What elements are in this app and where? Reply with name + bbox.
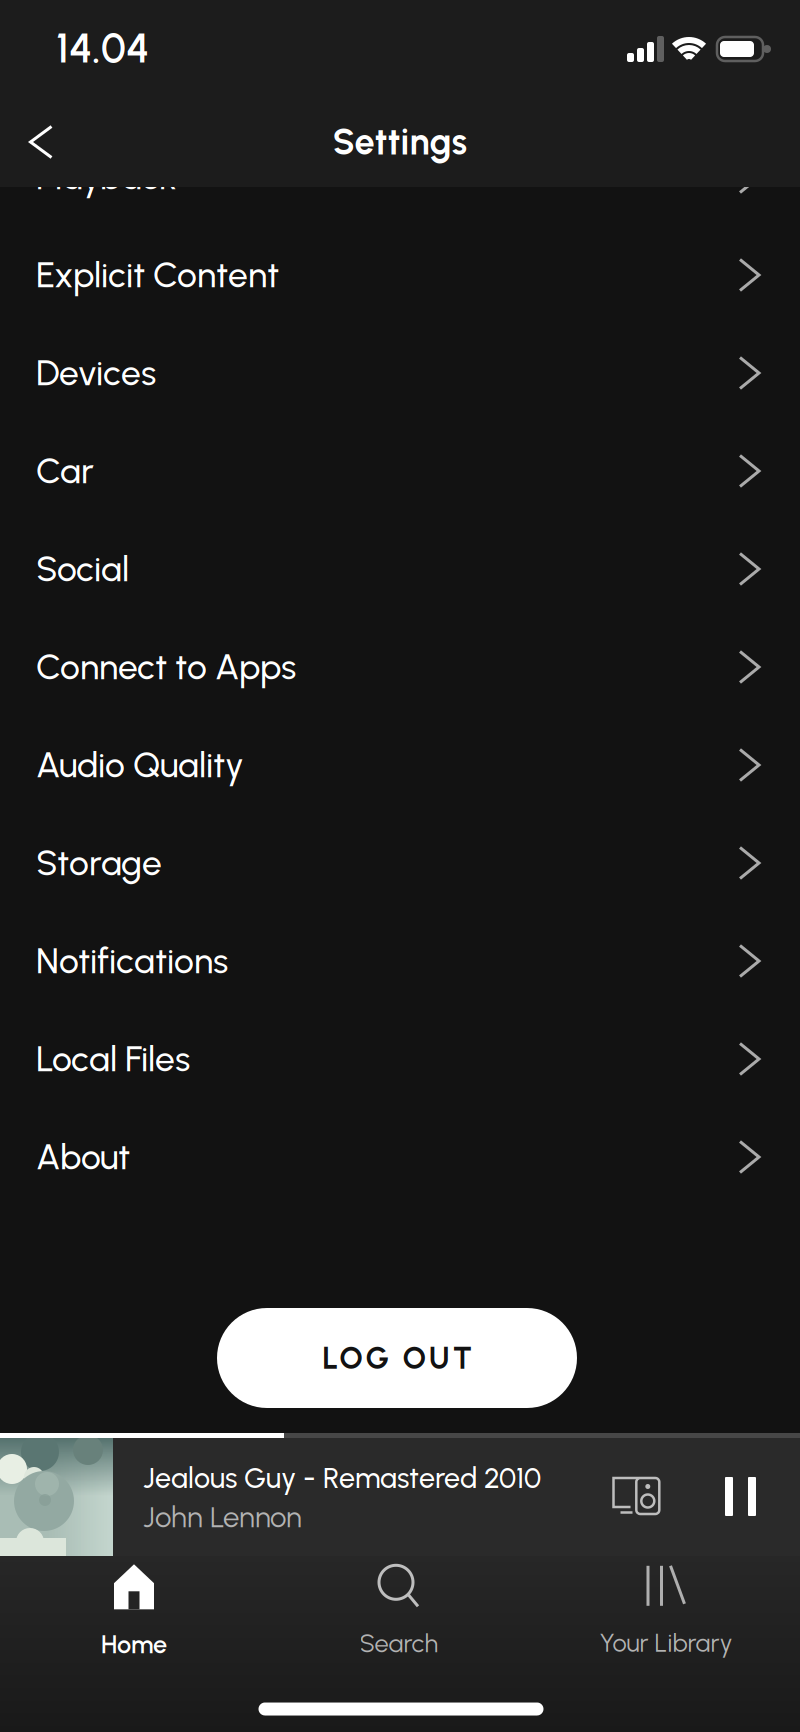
button[interactable]: LOG OUT [217, 1308, 577, 1408]
button[interactable]: Devices [0, 324, 800, 422]
staticText: Notifications [36, 940, 228, 982]
button[interactable]: Audio Quality [0, 716, 800, 814]
staticText: Your Library [599, 1628, 732, 1658]
staticText: Search [359, 1628, 438, 1659]
staticText: Devices [36, 352, 156, 394]
button[interactable]: Your Library [556, 1556, 776, 1668]
staticText: Playback [36, 156, 177, 198]
staticText: Settings [332, 120, 467, 164]
staticText: Car [36, 450, 94, 492]
button[interactable]: Explicit Content [0, 226, 800, 324]
button[interactable]: Back [18, 114, 63, 169]
button[interactable]: About [0, 1108, 800, 1206]
button[interactable]: Notifications [0, 912, 800, 1010]
staticText: Social [36, 548, 129, 590]
button[interactable]: Now playing: Jealous Guy by John Lennon [0, 1438, 800, 1556]
button[interactable]: Playback [0, 128, 800, 226]
button[interactable]: Home [44, 1556, 224, 1668]
button[interactable]: Search [309, 1556, 489, 1668]
button[interactable]: Social [0, 520, 800, 618]
staticText: Jealous Guy - Remastered 2010 [143, 1461, 541, 1495]
button[interactable]: Car [0, 422, 800, 520]
staticText: John Lennon [143, 1499, 302, 1535]
staticText: Home [101, 1629, 167, 1660]
button[interactable]: Connect to a device [603, 1468, 669, 1524]
staticText: Connect to Apps [36, 646, 296, 688]
staticText: 14.04 [56, 23, 149, 73]
staticText: About [36, 1136, 130, 1178]
button[interactable]: Storage [0, 814, 800, 912]
button[interactable]: Local Files [0, 1010, 800, 1108]
staticText: Explicit Content [36, 254, 279, 296]
button[interactable]: Connect to Apps [0, 618, 800, 716]
staticText: LOG OUT [322, 1340, 472, 1376]
staticText: Local Files [36, 1038, 190, 1080]
button[interactable]: Pause [713, 1465, 768, 1528]
staticText: Audio Quality [36, 744, 244, 786]
staticText: Storage [36, 842, 162, 884]
